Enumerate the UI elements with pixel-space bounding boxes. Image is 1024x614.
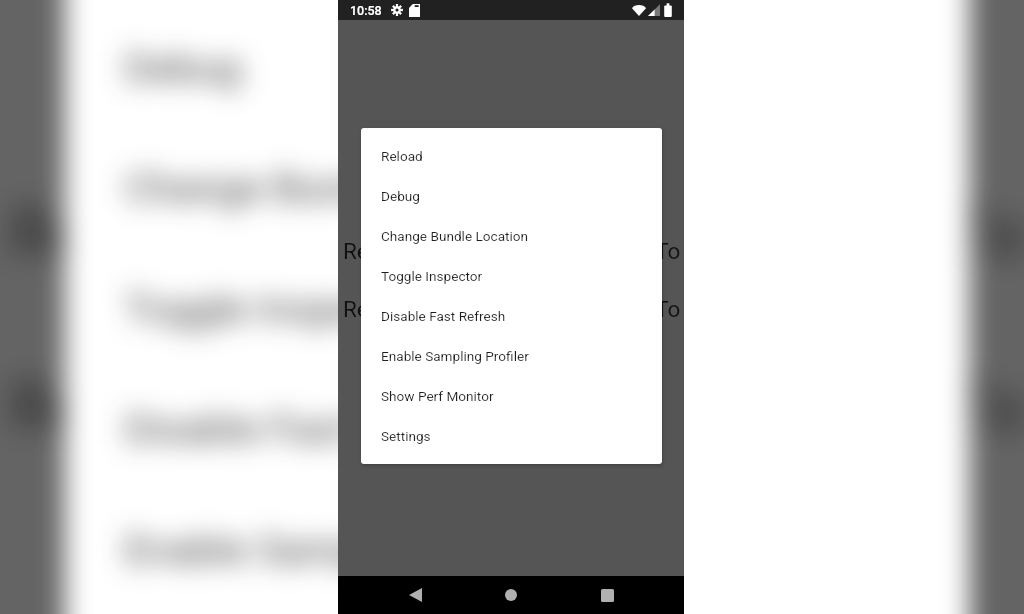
button[interactable]: Toggle Inspector xyxy=(361,256,662,296)
button[interactable]: Change Bundle Location xyxy=(361,216,662,256)
staticText: Tap To xyxy=(613,238,681,264)
button[interactable]: Toggle Inspector xyxy=(64,248,970,368)
staticText: Disable Fast Refresh xyxy=(124,404,501,452)
staticText: Enable Sampling Profiler xyxy=(381,348,529,364)
staticText: Tap To xyxy=(613,296,681,322)
button[interactable]: Home xyxy=(492,576,530,614)
staticText: Settings xyxy=(381,428,431,444)
button[interactable]: Change Bundle Location xyxy=(64,127,970,248)
staticText: Change Bundle Location xyxy=(381,228,529,244)
button[interactable]: Disable Fast Refresh xyxy=(64,368,970,488)
staticText: Reload xyxy=(10,368,221,446)
button[interactable]: Reload xyxy=(64,0,970,7)
staticText: Disable Fast Refresh xyxy=(381,308,506,324)
staticText: Reload xyxy=(381,148,423,164)
button[interactable]: Show Perf Monitor xyxy=(64,609,970,614)
button[interactable]: Disable Fast Refresh xyxy=(361,296,662,336)
button[interactable]: Settings xyxy=(361,416,662,456)
staticText: Tap To xyxy=(823,368,1024,446)
staticText: Tap To xyxy=(823,193,1024,272)
staticText: Enable Sampling Profiler xyxy=(124,524,570,573)
staticText: Reload xyxy=(343,296,413,322)
button[interactable]: Recent apps xyxy=(588,576,626,614)
button[interactable]: Show Perf Monitor xyxy=(361,376,662,416)
button[interactable]: Back xyxy=(396,576,434,614)
staticText: Show Perf Monitor xyxy=(381,388,494,404)
staticText: Change Bundle Location xyxy=(124,163,570,211)
button[interactable]: Reload xyxy=(361,136,662,176)
staticText: Debug xyxy=(381,188,420,204)
staticText: Toggle Inspector xyxy=(124,284,431,332)
button[interactable]: Debug xyxy=(361,176,662,216)
button[interactable]: Debug xyxy=(64,7,970,127)
button[interactable]: Enable Sampling Profiler xyxy=(361,336,662,376)
staticText: Toggle Inspector xyxy=(381,268,483,284)
staticText: Reload xyxy=(343,238,413,264)
staticText: 10:58 xyxy=(350,3,382,18)
button[interactable]: Enable Sampling Profiler xyxy=(64,488,970,609)
staticText: Debug xyxy=(124,43,242,91)
staticText: Reload xyxy=(10,193,221,272)
